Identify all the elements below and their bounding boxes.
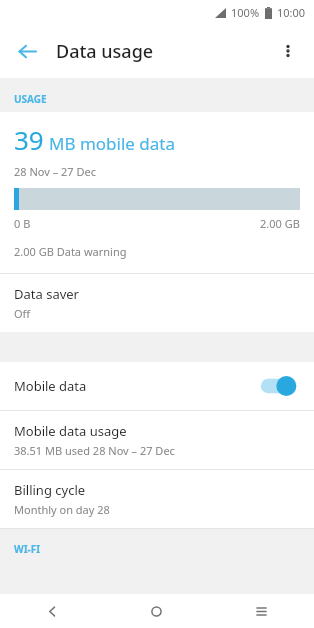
button[interactable]: More options xyxy=(268,31,308,71)
staticText: Mobile data usage xyxy=(14,422,127,440)
staticText: 38.51 MB used 28 Nov – 27 Dec xyxy=(14,443,175,458)
staticText: Off xyxy=(14,306,31,321)
button[interactable]: Mobile data toggle xyxy=(256,373,300,399)
button[interactable]: Back xyxy=(6,30,48,72)
button[interactable]: Mobile data usage xyxy=(0,411,314,469)
staticText: Data usage xyxy=(56,39,154,64)
button[interactable]: Recent apps xyxy=(209,594,314,628)
button[interactable]: Mobile data xyxy=(0,362,314,410)
button[interactable]: Data saver xyxy=(0,274,314,332)
staticText: 100% xyxy=(231,5,260,20)
staticText: 10:00 xyxy=(277,5,306,20)
staticText: MB mobile data xyxy=(49,132,175,155)
button[interactable]: Billing cycle xyxy=(0,470,314,528)
staticText: Data saver xyxy=(14,285,79,303)
button[interactable]: Home xyxy=(104,594,209,628)
staticText: USAGE xyxy=(14,92,47,106)
staticText: 0 B xyxy=(14,216,31,231)
staticText: Billing cycle xyxy=(14,481,86,499)
staticText: WI-FI xyxy=(14,542,41,556)
staticText: Monthly on day 28 xyxy=(14,502,110,517)
staticText: 28 Nov – 27 Dec xyxy=(14,164,97,179)
staticText: 2.00 GB xyxy=(260,216,300,231)
staticText: 2.00 GB Data warning xyxy=(14,244,127,259)
button[interactable]: Back xyxy=(0,594,104,628)
staticText: Mobile data xyxy=(14,377,87,395)
staticText: 39 xyxy=(14,122,44,157)
